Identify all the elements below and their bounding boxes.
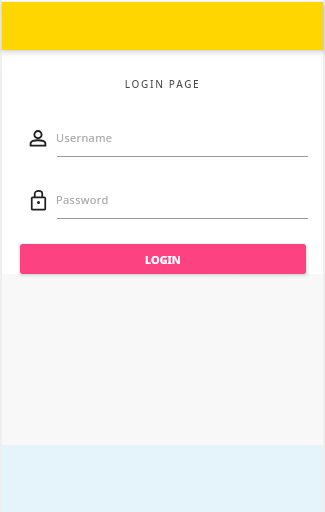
staticText: LOGIN PAGE: [2, 77, 323, 91]
button[interactable]: LOGIN: [20, 244, 306, 274]
other: Password: [31, 190, 46, 210]
staticText: Username: [56, 130, 113, 145]
staticText: LOGIN: [145, 252, 181, 267]
staticText: Password: [56, 192, 109, 207]
other: Username: [30, 130, 46, 146]
